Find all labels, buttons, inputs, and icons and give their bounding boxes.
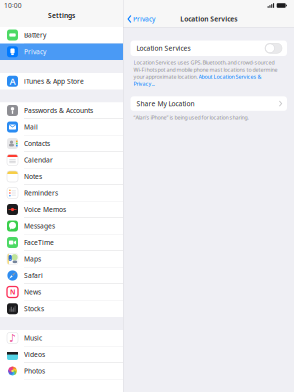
button[interactable]: Location Services	[265, 43, 282, 53]
staticText: Location Services	[136, 44, 190, 53]
button[interactable]: Voice Memos	[0, 201, 123, 218]
button[interactable]: Videos	[0, 346, 123, 363]
button[interactable]: ♪	[0, 330, 123, 346]
staticText: Privacy	[24, 47, 46, 56]
button[interactable]: Privacy	[123, 11, 159, 27]
button[interactable]: A	[0, 73, 123, 89]
staticText: Settings	[48, 11, 75, 20]
staticText: Notes	[24, 172, 42, 181]
staticText: Contacts	[24, 139, 50, 148]
staticText: Passwords & Accounts	[24, 106, 93, 115]
staticText: Stocks	[24, 304, 44, 313]
staticText: Location Services	[180, 15, 237, 23]
staticText: 00	[14, 1, 22, 10]
staticText: N	[10, 288, 15, 296]
button[interactable]: Maps	[0, 251, 123, 267]
staticText: Calendar	[24, 156, 53, 164]
button[interactable]: Reminders	[0, 185, 123, 201]
button[interactable]: Photos	[0, 363, 123, 379]
button[interactable]: Battery	[0, 27, 123, 43]
staticText: Messages	[24, 222, 55, 230]
staticText: Mail	[24, 123, 38, 131]
button[interactable]: Contacts	[0, 135, 123, 152]
staticText: Battery	[24, 31, 46, 39]
staticText: Reminders	[24, 189, 58, 197]
staticText: Maps	[24, 255, 41, 263]
staticText: News	[24, 288, 41, 296]
button[interactable]: Privacy	[0, 43, 123, 60]
staticText: Music	[24, 334, 42, 342]
staticText: Voice Memos	[24, 205, 66, 214]
button[interactable]: Passwords & Accounts	[0, 102, 123, 119]
staticText: FaceTime	[24, 238, 54, 247]
button[interactable]: Share My Location	[123, 87, 294, 111]
button[interactable]: Location Services	[123, 27, 294, 56]
button[interactable]: N	[0, 284, 123, 300]
button[interactable]: Messages	[0, 218, 123, 234]
button[interactable]: Notes	[0, 168, 123, 185]
staticText: Photos	[24, 367, 45, 375]
button[interactable]: Safari	[0, 267, 123, 284]
staticText: Safari	[24, 271, 43, 280]
staticText: “Alan’s iPhone” is being used for locati…	[133, 114, 248, 121]
staticText: A	[9, 75, 15, 87]
button[interactable]: FaceTime	[0, 234, 123, 251]
staticText: Privacy	[133, 15, 155, 23]
button[interactable]: Calendar	[0, 152, 123, 168]
staticText: 10	[4, 1, 12, 10]
button[interactable]: Mail	[0, 119, 123, 135]
staticText: iTunes & App Store	[24, 77, 84, 86]
staticText: ♪	[9, 332, 16, 344]
staticText: Videos	[24, 350, 45, 359]
staticText: Location Services uses GPS, Bluetooth, a…	[133, 59, 277, 87]
button[interactable]: Stocks	[0, 300, 123, 317]
staticText: Share My Location	[136, 99, 194, 108]
